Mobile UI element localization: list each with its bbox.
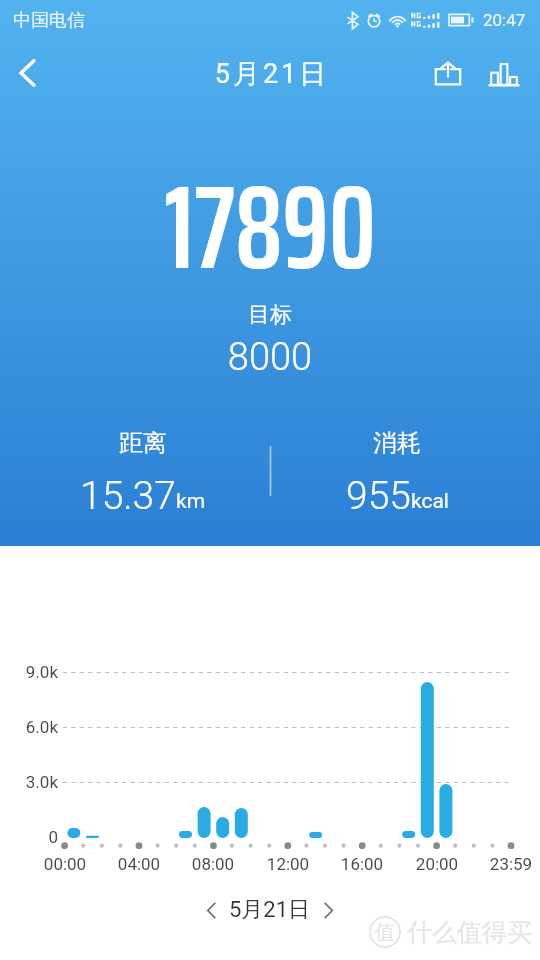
staticText: 23:59 bbox=[471, 854, 540, 874]
staticText: 0 bbox=[2, 827, 58, 847]
button[interactable]: Statistics bbox=[476, 43, 532, 103]
staticText: 5月21日 bbox=[229, 896, 311, 924]
staticText: 什么值得买 bbox=[407, 917, 532, 948]
staticText: 距离 bbox=[119, 428, 167, 458]
staticText: 中国电信 bbox=[13, 9, 85, 32]
staticText: 目标 bbox=[0, 301, 540, 329]
button[interactable]: Back bbox=[0, 42, 54, 104]
staticText: 16:00 bbox=[322, 854, 402, 874]
staticText: 955 bbox=[346, 473, 411, 519]
staticText: 00:00 bbox=[25, 854, 105, 874]
staticText: 3.0k bbox=[2, 772, 58, 792]
staticText: 6.0k bbox=[2, 717, 58, 737]
staticText: 12:00 bbox=[248, 854, 328, 874]
staticText: 值 bbox=[375, 920, 395, 945]
staticText: 9.0k bbox=[2, 662, 58, 682]
staticText: 20:00 bbox=[397, 854, 477, 874]
staticText: 08:00 bbox=[173, 854, 253, 874]
staticText: 5月21日 bbox=[2, 57, 540, 91]
button[interactable]: Share bbox=[420, 43, 476, 103]
staticText: 8000 bbox=[0, 335, 540, 380]
staticText: 17890 bbox=[0, 134, 540, 320]
button[interactable]: 5月21日 bbox=[195, 890, 345, 930]
staticText: 15.37 bbox=[80, 473, 176, 519]
staticText: kcal bbox=[411, 489, 449, 514]
staticText: 20:47 bbox=[483, 10, 526, 30]
staticText: 消耗 bbox=[373, 428, 421, 458]
staticText: km bbox=[176, 489, 206, 514]
staticText: 04:00 bbox=[99, 854, 179, 874]
